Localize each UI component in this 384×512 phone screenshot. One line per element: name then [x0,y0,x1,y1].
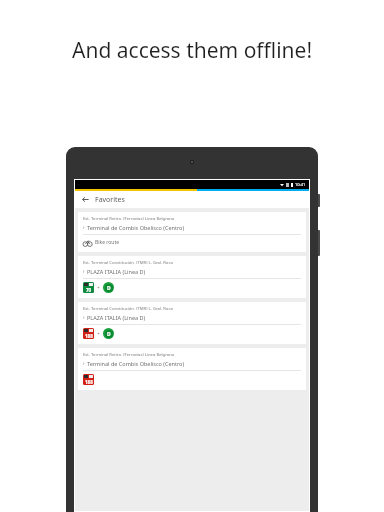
button[interactable]: Est. Terminal Constitución. (TMR) L. Gra… [78,256,306,298]
button[interactable]: Est. Terminal Retiro. (Ferrovias) Linea … [78,348,306,390]
button[interactable]: Est. Terminal Retiro. (Ferrovias) Linea … [78,212,306,252]
staticText: › [83,360,85,367]
staticText: 10:41 [295,182,306,187]
button[interactable]: Back [80,194,91,205]
staticText: Favorites [95,195,125,205]
button[interactable]: Subway line D [103,282,114,293]
staticText: Est. Terminal Retiro. (Ferrovias) Linea … [83,216,175,222]
staticText: › [83,268,85,275]
staticText: › [83,314,85,321]
staticText: › [83,224,85,231]
staticText: Terminal de Combis Obelisco (Centro) [87,224,185,231]
staticText: Est. Terminal Retiro. (Ferrovias) Linea … [83,352,175,358]
staticText: D [107,331,111,338]
button[interactable]: Bike route [83,238,120,247]
staticText: Terminal de Combis Obelisco (Centro) [87,360,185,367]
staticText: PLAZA ITALIA (Linea D) [87,268,146,275]
button[interactable]: Bus line 70 [83,282,94,293]
button[interactable]: Bus line 188 [83,374,94,385]
staticText: Est. Terminal Constitución. (TMR) L. Gra… [83,306,173,312]
staticText: D [107,285,111,292]
button[interactable]: Bus line 188 [83,328,94,339]
button[interactable]: Subway line D [103,328,114,339]
button[interactable]: Est. Terminal Constitución. (TMR) L. Gra… [78,302,306,344]
staticText: 70 [86,287,92,292]
staticText: Bike route [95,239,120,246]
staticText: And access them offline! [72,36,313,65]
staticText: PLAZA ITALIA (Linea D) [87,314,146,321]
staticText: Est. Terminal Constitución. (TMR) L. Gra… [83,260,173,266]
staticText: 188 [85,379,93,384]
staticText: 188 [85,333,93,338]
